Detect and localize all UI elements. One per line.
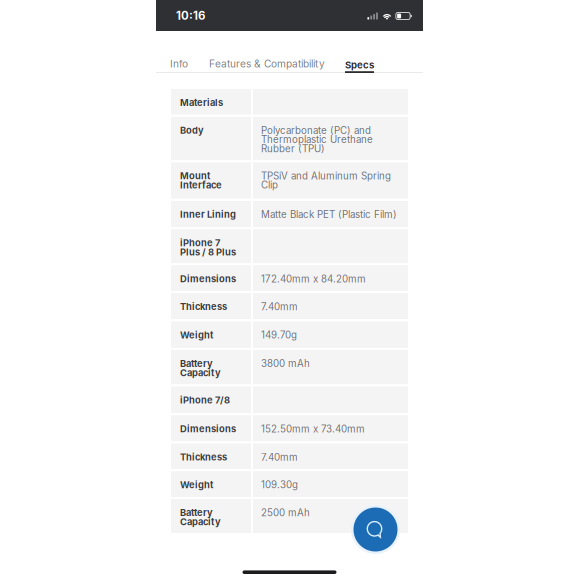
staticText: 3800 mAh	[261, 359, 310, 368]
staticText: Battery Capacity	[180, 359, 221, 377]
staticText: Mount Interface	[180, 171, 222, 190]
button[interactable]: Open chat	[351, 505, 400, 554]
button[interactable]: Specs	[345, 53, 374, 73]
staticText: Specs	[345, 59, 374, 71]
staticText: 7.40mm	[261, 302, 298, 311]
staticText: Matte Black PET (Plastic Film)	[261, 210, 397, 219]
staticText: 172.40mm x 84.20mm	[261, 274, 366, 283]
staticText: Inner Lining	[180, 210, 236, 219]
button[interactable]: Features & Compatibility	[209, 52, 325, 73]
staticText: Weight	[180, 480, 213, 489]
staticText: Info	[170, 58, 188, 70]
staticText: Thickness	[180, 302, 227, 311]
staticText: Body	[180, 126, 204, 135]
staticText: Thickness	[180, 452, 227, 462]
staticText: iPhone 7/8	[180, 395, 230, 405]
staticText: 7.40mm	[261, 452, 298, 462]
staticText: Materials	[180, 98, 223, 107]
staticText: 2500 mAh	[261, 508, 310, 517]
staticText: Polycarbonate (PC) and Thermoplastic Ure…	[261, 126, 373, 153]
staticText: 149.70g	[261, 330, 297, 340]
staticText: Battery Capacity	[180, 508, 221, 526]
staticText: Features & Compatibility	[209, 58, 325, 70]
staticText: 109.30g	[261, 480, 298, 489]
staticText: 10:16	[176, 9, 205, 22]
staticText: Weight	[180, 330, 213, 340]
button[interactable]: Info	[170, 52, 188, 73]
staticText: Dimensions	[180, 424, 236, 434]
staticText: iPhone 7 Plus / 8 Plus	[180, 238, 236, 257]
staticText: Dimensions	[180, 274, 236, 284]
staticText: TPSiV and Aluminum Spring Clip	[261, 171, 391, 190]
staticText: 152.50mm x 73.40mm	[261, 424, 365, 433]
